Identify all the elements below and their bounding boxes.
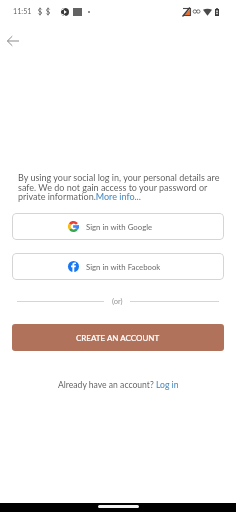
staticText: Sign in with Facebook (86, 262, 161, 271)
button[interactable]: CREATE AN ACCOUNT (12, 324, 224, 351)
staticText: (or) (112, 297, 123, 306)
staticText: Sign in with Google (86, 222, 153, 231)
button[interactable]: Sign in with Google (12, 213, 224, 240)
button[interactable]: Sign in with Facebook (12, 253, 224, 280)
button[interactable]: Log in (156, 380, 179, 390)
staticText: By using your social log in, your person… (18, 172, 220, 202)
staticText: Already have an account? (58, 380, 156, 390)
staticText: CREATE AN ACCOUNT (76, 333, 160, 343)
staticText: 11:51 (13, 7, 32, 16)
button[interactable]: Back (1, 29, 24, 52)
